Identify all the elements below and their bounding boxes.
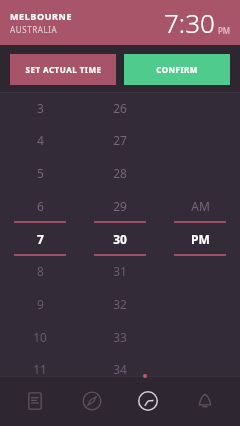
button[interactable]: Explore xyxy=(70,379,114,423)
staticText: AM xyxy=(191,198,210,214)
staticText: 8 xyxy=(37,263,44,279)
staticText: SET ACTUAL TIME xyxy=(25,64,102,75)
staticText: 6 xyxy=(37,198,44,214)
button[interactable]: 3 xyxy=(0,93,240,376)
staticText: 26 xyxy=(113,100,127,116)
staticText: 11 xyxy=(33,361,47,377)
button[interactable]: AM xyxy=(0,93,240,376)
staticText: 32 xyxy=(113,296,127,312)
staticText: 28 xyxy=(113,165,127,181)
staticText: MELBOURNE xyxy=(10,10,73,22)
staticText: PM xyxy=(191,231,210,247)
staticText: 3 xyxy=(37,100,44,116)
staticText: 7:30 xyxy=(164,5,215,40)
button[interactable]: CONFIRM xyxy=(124,54,230,85)
button[interactable]: Clock xyxy=(126,379,170,423)
staticText: 27 xyxy=(113,132,127,148)
button[interactable]: SET ACTUAL TIME xyxy=(10,54,116,85)
button[interactable]: 26 xyxy=(0,93,240,376)
staticText: 5 xyxy=(37,165,44,181)
staticText: 4 xyxy=(37,132,44,148)
staticText: 29 xyxy=(113,198,127,214)
staticText: AUSTRALIA xyxy=(10,24,58,35)
staticText: PM xyxy=(218,25,231,36)
staticText: 30 xyxy=(113,231,127,247)
staticText: CONFIRM xyxy=(156,64,198,75)
staticText: 34 xyxy=(113,361,127,377)
staticText: 9 xyxy=(37,296,44,312)
staticText: 7 xyxy=(37,231,44,247)
button[interactable]: List xyxy=(13,379,57,423)
staticText: 33 xyxy=(113,329,127,345)
button[interactable]: Alarms xyxy=(183,379,227,423)
staticText: 31 xyxy=(113,263,127,279)
staticText: 10 xyxy=(33,329,47,345)
